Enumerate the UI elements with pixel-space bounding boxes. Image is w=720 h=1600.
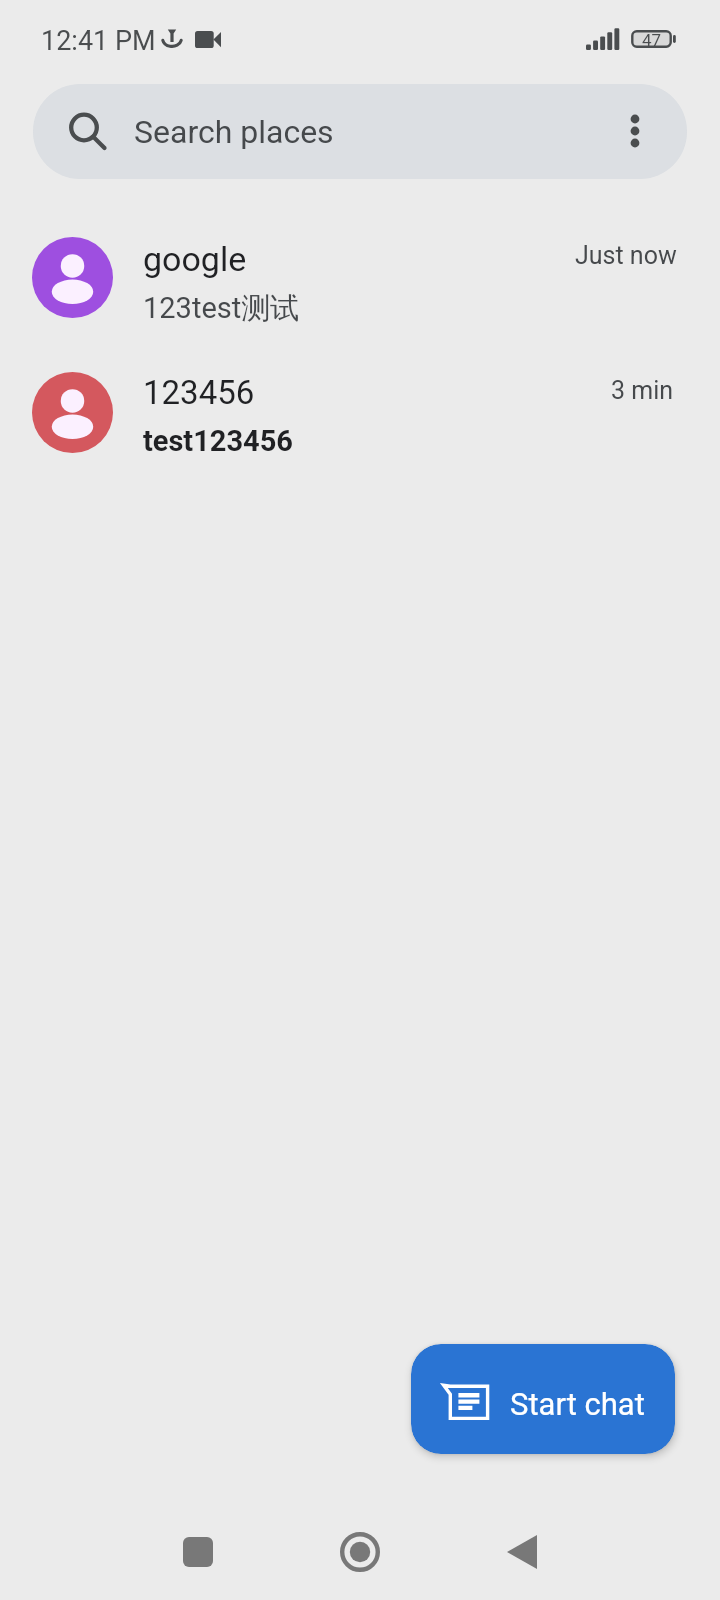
button[interactable]: Recents (158, 1512, 238, 1592)
button[interactable]: Search (33, 84, 687, 179)
staticText: 3 min (611, 376, 674, 405)
staticText: Search places (134, 113, 334, 151)
staticText: 47 (642, 30, 662, 48)
staticText: Start chat (510, 1386, 645, 1422)
staticText: 123test测试 (143, 290, 300, 327)
button[interactable]: More options (609, 105, 661, 157)
button[interactable]: google (0, 237, 720, 357)
button[interactable]: Start chat (411, 1344, 675, 1454)
staticText: google (143, 239, 247, 279)
other: Search (67, 111, 111, 153)
button[interactable]: Back (482, 1512, 562, 1592)
staticText: test123456 (143, 424, 294, 458)
button[interactable]: Home (320, 1512, 400, 1592)
staticText: Just now (575, 241, 677, 270)
staticText: 123456 (143, 373, 255, 412)
button[interactable]: 123456 (0, 372, 720, 492)
staticText: 12:41 PM (41, 25, 156, 57)
